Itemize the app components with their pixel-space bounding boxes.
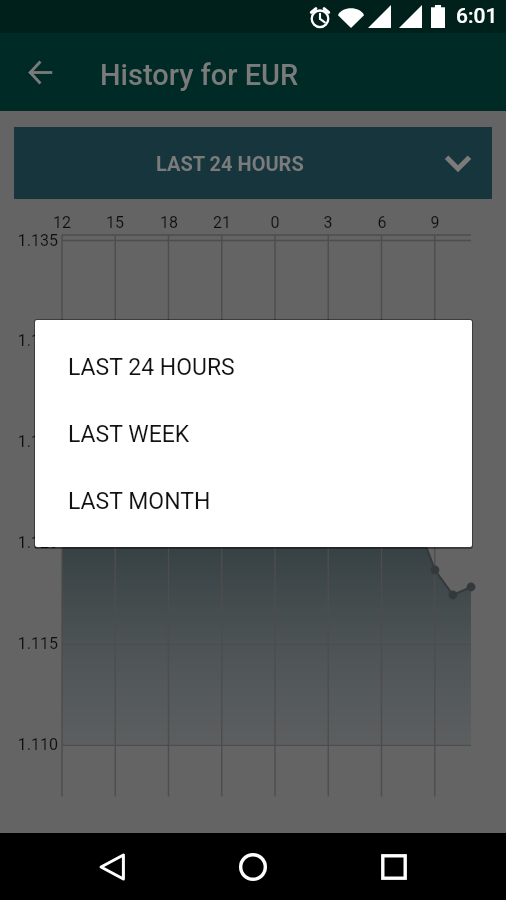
- staticText: 21: [202, 213, 242, 232]
- staticText: 1.135: [10, 231, 58, 250]
- staticText: 18: [149, 213, 189, 232]
- button[interactable]: Recent apps: [364, 833, 424, 900]
- staticText: 1.120: [10, 533, 58, 552]
- staticText: 3: [308, 213, 348, 232]
- staticText: LAST WEEK: [68, 421, 190, 448]
- button[interactable]: LAST 24 HOURS: [14, 127, 492, 199]
- button[interactable]: LAST WEEK: [35, 401, 472, 468]
- staticText: History for EUR: [100, 58, 299, 92]
- staticText: 6:01: [456, 4, 498, 29]
- button[interactable]: LAST 24 HOURS: [35, 334, 472, 401]
- staticText: 6: [362, 213, 402, 232]
- button[interactable]: Navigate up: [16, 48, 64, 96]
- staticText: 9: [415, 213, 455, 232]
- staticText: 15: [95, 213, 135, 232]
- button[interactable]: Back: [83, 833, 143, 900]
- button[interactable]: Home: [223, 833, 283, 900]
- staticText: LAST MONTH: [68, 488, 211, 515]
- staticText: 12: [42, 213, 82, 232]
- staticText: 1.125: [10, 432, 58, 451]
- staticText: LAST 24 HOURS: [68, 354, 235, 381]
- staticText: LAST 24 HOURS: [156, 152, 304, 175]
- staticText: 0: [255, 213, 295, 232]
- staticText: 1.110: [10, 735, 58, 754]
- button[interactable]: LAST MONTH: [35, 468, 472, 535]
- staticText: 1.115: [10, 634, 58, 653]
- staticText: 1.130: [10, 331, 58, 350]
